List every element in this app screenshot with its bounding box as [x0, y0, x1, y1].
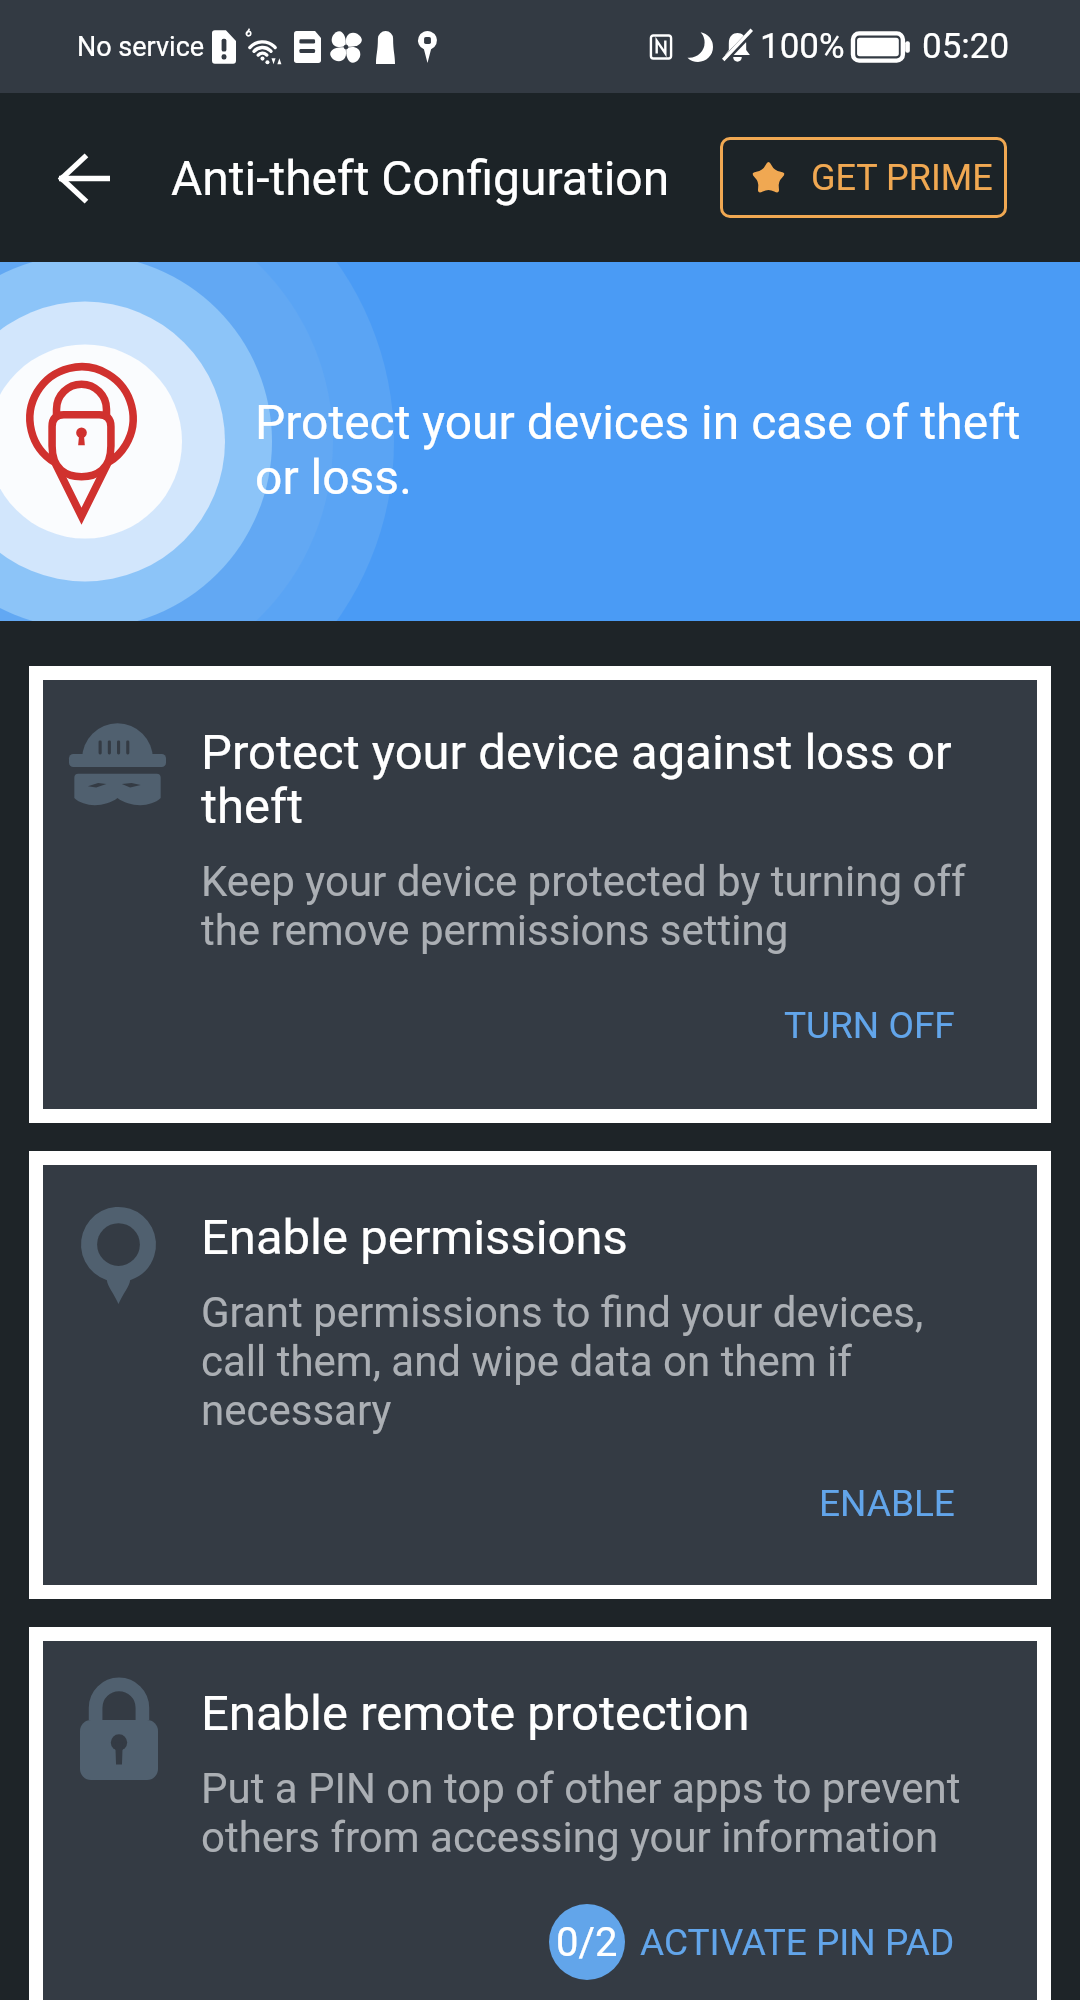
staticText: Keep your device protected by turning of…	[201, 857, 966, 955]
button[interactable]: GET PRIME	[720, 137, 1007, 218]
staticText: ACTIVATE PIN PAD	[640, 1921, 955, 1964]
button[interactable]: Protect your device against loss or thef…	[43, 680, 1037, 1109]
staticText: Protect your devices in case of theft or…	[255, 394, 1021, 506]
staticText: 0/2	[556, 1919, 618, 1966]
staticText: No service	[77, 31, 205, 63]
staticText: 100%	[760, 26, 845, 67]
staticText: Enable permissions	[201, 1209, 628, 1266]
staticText: TURN OFF	[784, 1004, 955, 1047]
button[interactable]: ENABLE	[811, 1474, 963, 1533]
button[interactable]: Enable permissions	[43, 1165, 1037, 1585]
button[interactable]: TURN OFF	[776, 994, 963, 1057]
staticText: Anti-theft Configuration	[171, 150, 670, 206]
staticText: 05:20	[922, 26, 1010, 67]
staticText: Put a PIN on top of other apps to preven…	[201, 1764, 961, 1862]
staticText: Enable remote protection	[201, 1685, 750, 1742]
staticText: Grant permissions to find your devices, …	[201, 1288, 924, 1435]
staticText: GET PRIME	[811, 157, 993, 199]
staticText: ENABLE	[819, 1482, 955, 1525]
staticText: Protect your device against loss or thef…	[201, 724, 1027, 835]
button[interactable]: 0/2	[541, 1898, 963, 1986]
button[interactable]: Back	[36, 130, 132, 226]
button[interactable]: Enable remote protection	[43, 1641, 1037, 2000]
